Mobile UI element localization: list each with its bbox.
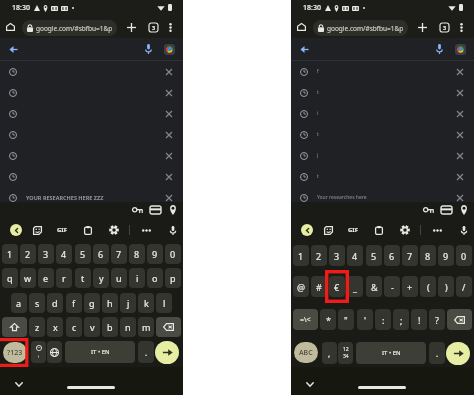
button[interactable]: Clipboard (372, 223, 386, 237)
button[interactable]: 3 (38, 244, 54, 264)
button[interactable]: Voice search (140, 41, 156, 57)
button[interactable]: Remove suggestion (162, 128, 176, 142)
button[interactable]: 1 (293, 245, 309, 266)
button[interactable]: x (47, 317, 63, 337)
button[interactable]: . (429, 342, 445, 364)
button[interactable]: * (320, 309, 336, 330)
button[interactable]: 6 (384, 245, 400, 266)
button[interactable]: u (111, 268, 127, 288)
button[interactable]: More (430, 223, 444, 237)
button[interactable]: e (38, 268, 54, 288)
button[interactable]: Remove suggestion (0, 145, 183, 166)
button[interactable]: f (66, 293, 82, 313)
button[interactable]: t (291, 166, 474, 187)
button[interactable]: Passwords (420, 202, 436, 218)
button[interactable]: Enter (446, 342, 470, 365)
button[interactable]: g (84, 293, 100, 313)
button[interactable]: 0 (456, 245, 472, 266)
button[interactable]: Tabs (436, 19, 452, 35)
button[interactable]: Expand toolbar (10, 224, 22, 236)
button[interactable]: Stickers (30, 223, 44, 237)
button[interactable]: google.com/#sbfbu=1&p (313, 20, 408, 36)
button[interactable]: Clipboard (81, 223, 95, 237)
button[interactable]: Search with camera (452, 41, 468, 57)
button[interactable]: j (120, 293, 136, 313)
button[interactable]: Remove suggestion (162, 149, 176, 163)
button[interactable]: Home (3, 19, 18, 34)
button[interactable]: . (138, 341, 154, 363)
button[interactable]: Search with camera (161, 41, 177, 57)
button[interactable]: + (402, 276, 418, 297)
button[interactable]: 4 (347, 245, 363, 266)
button[interactable]: 2 (20, 244, 36, 264)
button[interactable]: i (291, 103, 474, 124)
button[interactable]: =\< (293, 309, 318, 330)
button[interactable]: t (291, 124, 474, 145)
button[interactable]: Remove suggestion (0, 82, 183, 103)
button[interactable]: 0 (165, 244, 181, 264)
button[interactable]: 8 (420, 245, 436, 266)
button[interactable]: More options (162, 19, 178, 35)
button[interactable]: 7 (402, 245, 418, 266)
button[interactable]: f (291, 61, 474, 82)
button[interactable]: b (102, 317, 118, 337)
button[interactable]: € (329, 276, 345, 297)
button[interactable]: a (11, 293, 27, 313)
button[interactable]: Voice input (166, 223, 180, 237)
button[interactable]: ' (357, 309, 373, 330)
button[interactable]: s (29, 293, 45, 313)
button[interactable]: ? (429, 309, 445, 330)
button[interactable]: 4 (56, 244, 72, 264)
button[interactable]: Back (296, 41, 312, 57)
button[interactable]: Voice search (431, 41, 447, 57)
button[interactable]: New tab (123, 19, 139, 35)
button[interactable]: ?123 (3, 342, 27, 363)
button[interactable]: l (156, 293, 172, 313)
button[interactable]: & (366, 276, 382, 297)
button[interactable]: Backspace (156, 317, 181, 337)
button[interactable]: Payment methods (147, 202, 163, 218)
button[interactable]: 9 (147, 244, 163, 264)
button[interactable]: 2 (311, 245, 327, 266)
button[interactable]: r (56, 268, 72, 288)
button[interactable]: ! (411, 309, 427, 330)
button[interactable]: Tabs (145, 19, 161, 35)
button[interactable]: / (456, 276, 472, 297)
button[interactable]: Remove suggestion (162, 170, 176, 184)
button[interactable]: @ (293, 276, 309, 297)
button[interactable]: Your researches here (291, 187, 474, 208)
button[interactable]: Hide keyboard (12, 377, 26, 391)
button[interactable]: Remove suggestion (453, 107, 467, 121)
button[interactable]: google.com/#sbfbu=1&p (22, 20, 117, 36)
button[interactable]: y (93, 268, 109, 288)
button[interactable]: Remove suggestion (162, 65, 176, 79)
button[interactable]: Remove suggestion (0, 103, 183, 124)
button[interactable]: m (138, 317, 154, 337)
button[interactable]: Remove suggestion (453, 191, 467, 205)
button[interactable]: t (291, 82, 474, 103)
button[interactable]: Expand toolbar (301, 224, 313, 236)
button[interactable]: Remove suggestion (453, 128, 467, 142)
button[interactable]: Remove suggestion (453, 170, 467, 184)
button[interactable]: Stickers (321, 223, 335, 237)
button[interactable]: New tab (414, 19, 430, 35)
button[interactable]: Back (5, 41, 21, 57)
button[interactable]: Hide keyboard (303, 377, 317, 391)
button[interactable]: _ (347, 276, 363, 297)
button[interactable]: Passwords (129, 202, 145, 218)
button[interactable]: j (291, 145, 474, 166)
button[interactable]: Home (294, 19, 309, 34)
button[interactable]: 8 (129, 244, 145, 264)
button[interactable]: IT • EN (65, 341, 135, 363)
button[interactable]: Shift (2, 317, 27, 337)
button[interactable]: Payment methods (438, 202, 454, 218)
button[interactable]: d (47, 293, 63, 313)
button[interactable]: o (147, 268, 163, 288)
button[interactable]: v (84, 317, 100, 337)
button[interactable]: ( (420, 276, 436, 297)
button[interactable]: i (129, 268, 145, 288)
button[interactable]: Addresses (456, 202, 472, 218)
button[interactable]: GIF (346, 223, 360, 237)
button[interactable]: Remove suggestion (162, 107, 176, 121)
button[interactable]: t (75, 268, 91, 288)
